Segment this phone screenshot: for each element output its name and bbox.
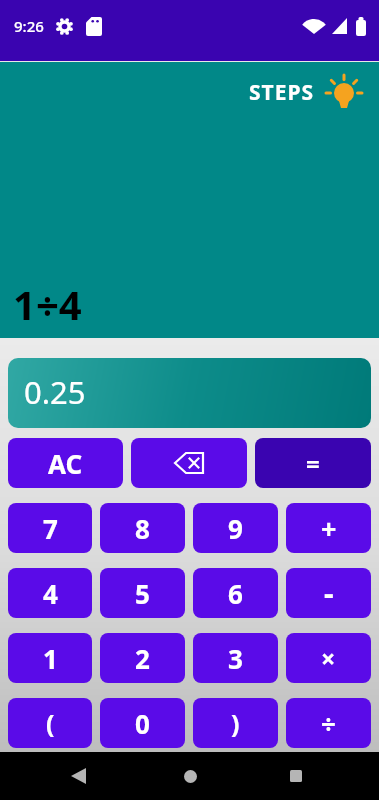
button[interactable]: STEPS: [249, 72, 363, 112]
staticText: 9:26: [14, 16, 44, 36]
staticText: 8: [135, 511, 150, 546]
staticText: 5: [135, 576, 150, 611]
button[interactable]: 0.25: [8, 358, 371, 428]
staticText: AC: [48, 446, 83, 481]
staticText: (: [46, 706, 55, 740]
button[interactable]: ×: [286, 633, 371, 683]
button[interactable]: ): [193, 698, 278, 748]
staticText: 7: [43, 511, 58, 546]
button[interactable]: 9: [193, 503, 278, 553]
staticText: ×: [321, 641, 336, 675]
staticText: 2: [135, 641, 150, 676]
staticText: 6: [228, 576, 243, 611]
button[interactable]: 2: [100, 633, 185, 683]
staticText: 4: [43, 576, 58, 611]
staticText: +: [321, 510, 337, 547]
button[interactable]: 7: [8, 503, 92, 553]
button[interactable]: 6: [193, 568, 278, 618]
button[interactable]: 3: [193, 633, 278, 683]
button[interactable]: AC: [8, 438, 123, 488]
button[interactable]: ÷: [286, 698, 371, 748]
staticText: ): [231, 706, 240, 740]
button[interactable]: [64, 762, 92, 790]
staticText: STEPS: [249, 78, 315, 107]
button[interactable]: 5: [100, 568, 185, 618]
staticText: 0: [135, 706, 150, 741]
staticText: =: [306, 447, 320, 480]
button[interactable]: 1: [8, 633, 92, 683]
staticText: ÷: [321, 706, 336, 741]
button[interactable]: (: [8, 698, 92, 748]
staticText: 9: [228, 511, 243, 546]
button[interactable]: [282, 762, 310, 790]
button[interactable]: -: [286, 568, 371, 618]
staticText: 3: [228, 641, 243, 676]
button[interactable]: [131, 438, 247, 488]
staticText: 1: [43, 641, 58, 676]
staticText: 0.25: [24, 371, 86, 413]
button[interactable]: [176, 762, 204, 790]
button[interactable]: 8: [100, 503, 185, 553]
button[interactable]: 0: [100, 698, 185, 748]
staticText: -: [324, 572, 334, 613]
button[interactable]: 4: [8, 568, 92, 618]
button[interactable]: +: [286, 503, 371, 553]
staticText: 1÷4: [13, 277, 82, 331]
button[interactable]: =: [255, 438, 371, 488]
